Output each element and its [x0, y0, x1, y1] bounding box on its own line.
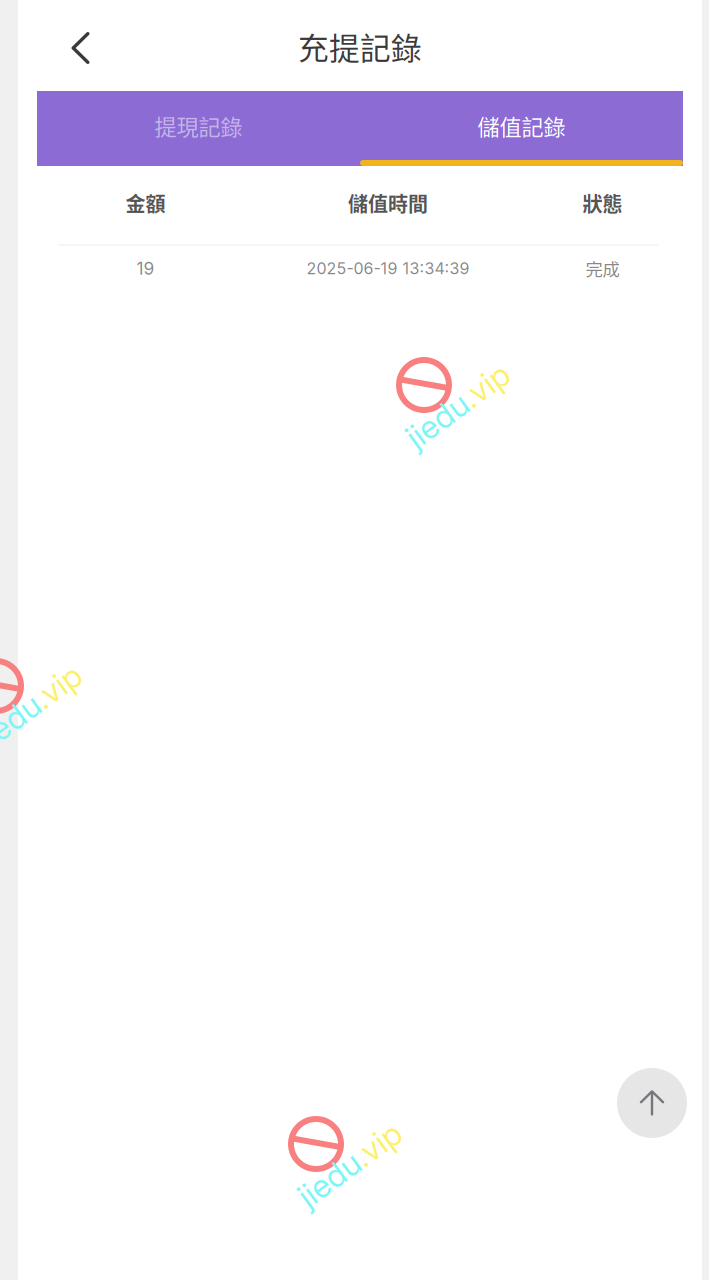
button[interactable]: 儲值記錄	[360, 91, 683, 166]
staticText: 儲值記錄	[477, 109, 565, 141]
button[interactable]: Scroll to top	[617, 1068, 687, 1138]
staticText: 狀態	[582, 188, 622, 217]
staticText: 金額	[125, 188, 165, 217]
button[interactable]: 提現記錄	[37, 91, 360, 166]
staticText: .vip	[39, 687, 90, 726]
staticText: 完成	[585, 256, 619, 281]
staticText: jiedu	[290, 1145, 359, 1184]
staticText: .vip	[359, 1145, 410, 1184]
staticText: jiedu	[398, 386, 467, 425]
button[interactable]: Back	[45, 13, 115, 83]
staticText: 充提記錄	[298, 24, 422, 69]
staticText: 19	[136, 258, 154, 279]
staticText: 儲值時間	[348, 188, 428, 217]
staticText: 2025-06-19 13:34:39	[306, 259, 469, 278]
staticText: jiedu	[0, 687, 39, 726]
staticText: 提現記錄	[154, 109, 242, 141]
staticText: .vip	[467, 386, 518, 425]
